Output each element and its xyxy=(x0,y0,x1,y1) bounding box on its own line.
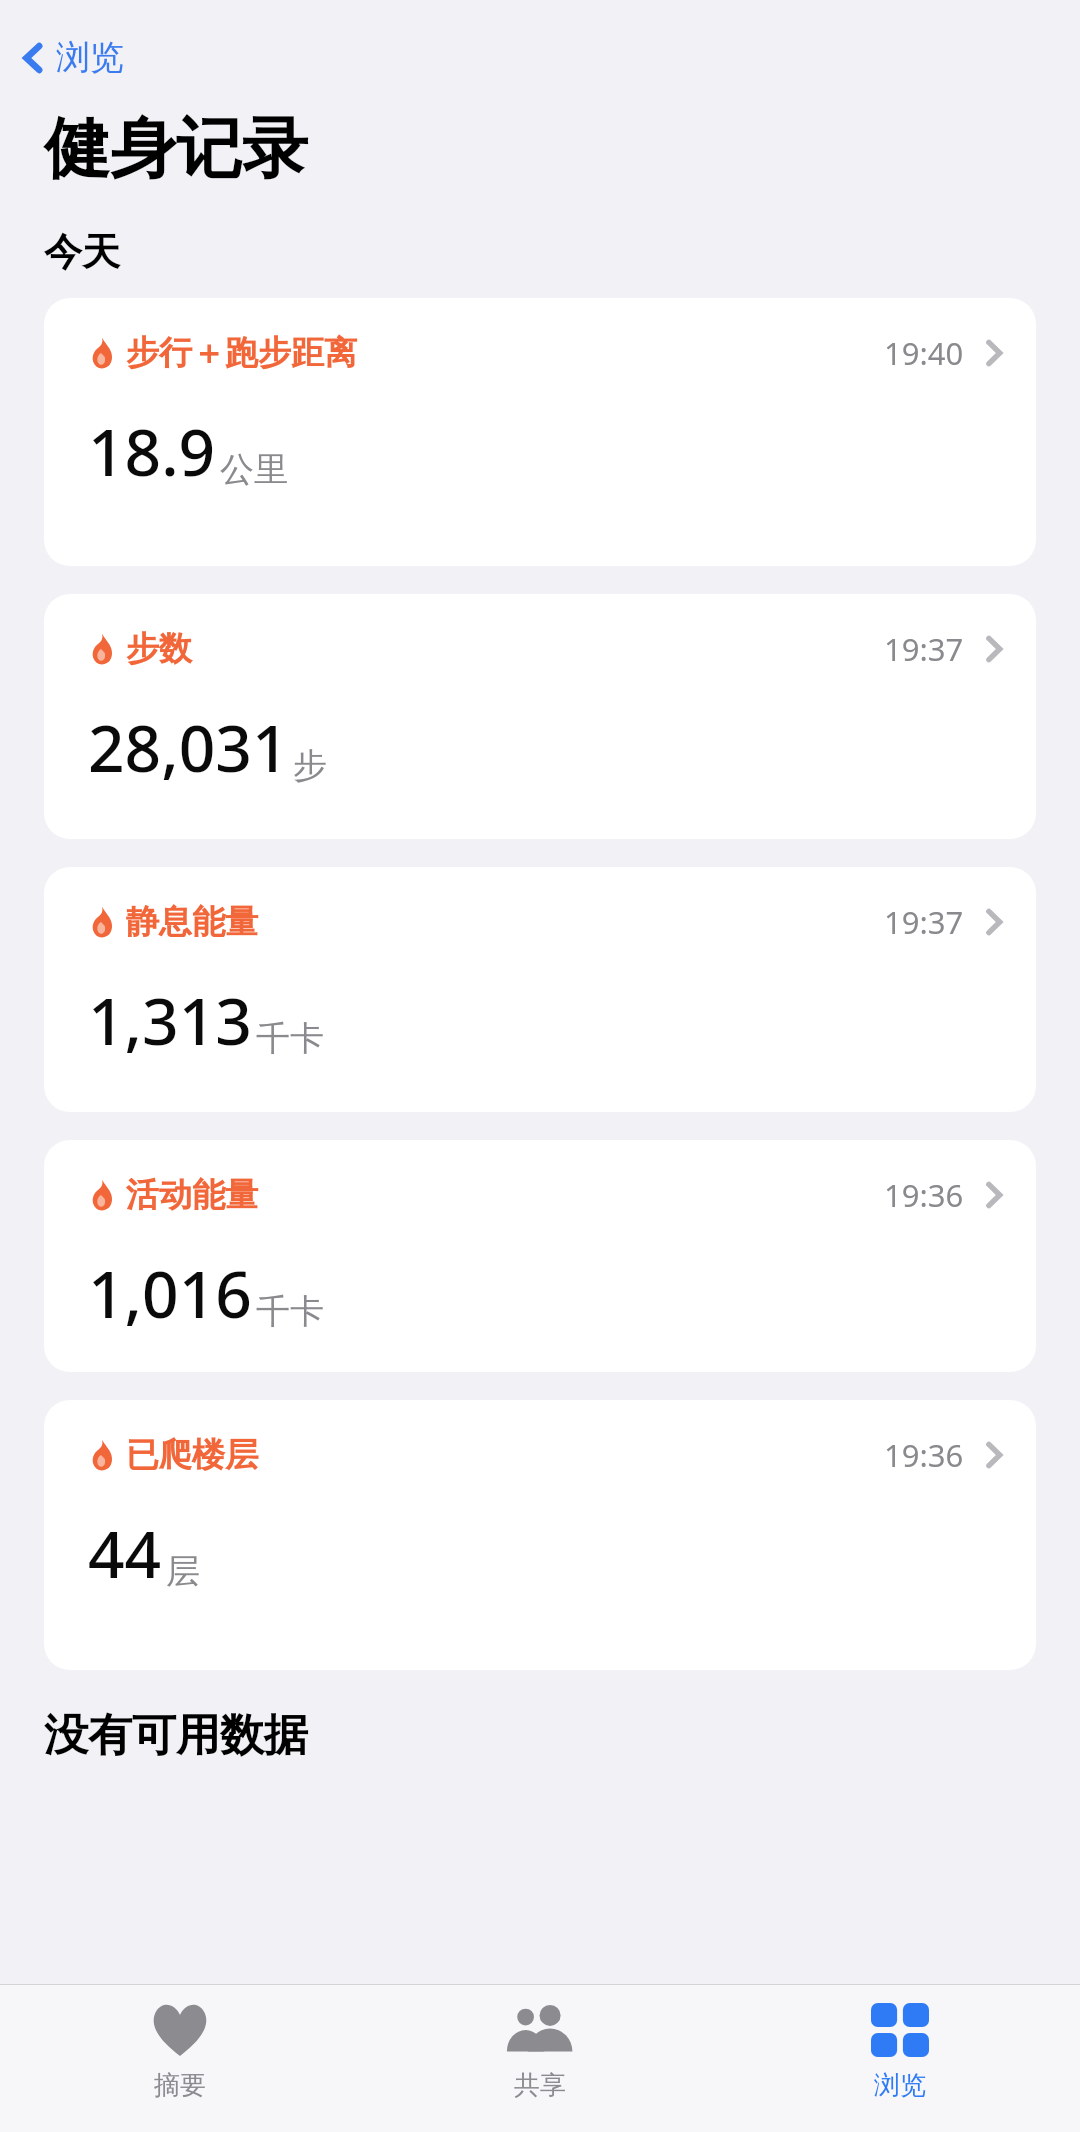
button[interactable]: 摘要 xyxy=(0,1985,360,2102)
staticText: 18.9 xyxy=(88,408,216,495)
staticText: 19:37 xyxy=(884,901,964,943)
staticText: 没有可用数据 xyxy=(44,1708,308,1763)
staticText: 19:37 xyxy=(884,628,964,670)
button[interactable]: 浏览 xyxy=(0,30,144,85)
other: 摘要 xyxy=(150,2003,210,2057)
other: 共享 xyxy=(504,2003,576,2057)
staticText: 层 xyxy=(166,1550,200,1593)
staticText: 公里 xyxy=(220,448,288,491)
staticText: 步 xyxy=(293,744,327,787)
staticText: 19:36 xyxy=(884,1174,964,1216)
staticText: 活动能量 xyxy=(126,1174,258,1216)
button[interactable]: 浏览 xyxy=(720,1985,1080,2102)
button[interactable]: 共享 xyxy=(360,1985,720,2102)
staticText: 摘要 xyxy=(154,2069,206,2102)
staticText: 健身记录 xyxy=(44,107,308,190)
button[interactable]: 步行＋跑步距离 xyxy=(44,298,1036,566)
staticText: 今天 xyxy=(44,228,120,276)
button[interactable]: 活动能量 xyxy=(44,1140,1036,1372)
staticText: 静息能量 xyxy=(126,901,258,943)
staticText: 已爬楼层 xyxy=(126,1434,258,1476)
staticText: 1,016 xyxy=(88,1250,252,1337)
staticText: 19:40 xyxy=(884,332,964,374)
staticText: 44 xyxy=(88,1510,162,1597)
staticText: 19:36 xyxy=(884,1434,964,1476)
staticText: 浏览 xyxy=(874,2069,926,2102)
staticText: 千卡 xyxy=(256,1017,324,1060)
staticText: 1,313 xyxy=(88,977,252,1064)
staticText: 千卡 xyxy=(256,1290,324,1333)
button[interactable]: 静息能量 xyxy=(44,867,1036,1112)
staticText: 28,031 xyxy=(88,704,289,791)
staticText: 步行＋跑步距离 xyxy=(126,332,357,374)
other: 浏览 xyxy=(871,2003,929,2057)
staticText: 浏览 xyxy=(56,36,124,79)
staticText: 步数 xyxy=(126,628,192,670)
button[interactable]: 已爬楼层 xyxy=(44,1400,1036,1670)
button[interactable]: 步数 xyxy=(44,594,1036,839)
staticText: 共享 xyxy=(514,2069,566,2102)
